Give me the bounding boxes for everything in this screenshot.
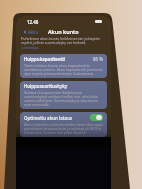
- staticText: Sisäisen komponentin ikääntyessä suoritu…: [24, 90, 103, 107]
- staticText: Akun kunto: [48, 28, 79, 35]
- button[interactable]: Akku: [23, 29, 39, 35]
- button[interactable]: Optimoitu akun lataus: [24, 114, 103, 121]
- staticText: 12.48: [27, 19, 39, 25]
- staticText: Huippukapasiteetti: [24, 56, 66, 62]
- staticText: Puhelimen akun kunto heikkenee iän ja kä…: [21, 36, 106, 45]
- button[interactable]: Huippusuorituskyky: [20, 81, 107, 109]
- staticText: Optimoitu akun lataus: [24, 115, 73, 121]
- staticText: Huippusuorituskyky: [24, 83, 68, 89]
- staticText: Akku: [28, 29, 39, 35]
- button[interactable]: Huippukapasiteetti: [20, 54, 107, 78]
- staticText: 86 %: [93, 56, 103, 62]
- staticText: Akun käyttöiän pidentämiseksi tämä laite…: [24, 122, 103, 135]
- staticText: Tämä mittaus kuvaa akun kapasiteettia ve…: [24, 63, 103, 76]
- staticText: Lisätietoja...: [21, 45, 42, 50]
- other: Optimoitu akun lataus: [90, 114, 103, 121]
